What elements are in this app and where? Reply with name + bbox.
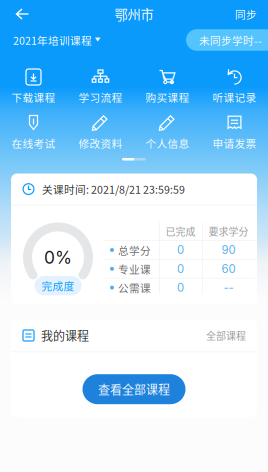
staticText: 60 — [221, 262, 235, 276]
button[interactable]: 返回 — [0, 0, 44, 28]
button[interactable]: 2021年培训课程 — [13, 27, 101, 53]
staticText: 在线考试 — [11, 135, 55, 151]
staticText: 要求学分 — [208, 224, 248, 238]
staticText: 查看全部课程 — [98, 380, 170, 398]
staticText: 鄂州市 — [114, 4, 153, 24]
staticText: 关课时间: 2021/8/21 23:59:59 — [42, 181, 185, 197]
button[interactable]: 个人信息 — [134, 108, 201, 154]
button[interactable]: 未同步学时-- — [186, 29, 268, 51]
staticText: 个人信息 — [145, 135, 189, 151]
button[interactable]: 学习流程 — [67, 62, 134, 108]
button[interactable]: 同步 — [224, 0, 268, 28]
staticText: 听课记录 — [212, 89, 256, 105]
staticText: 同步 — [235, 6, 257, 22]
staticText: 0 — [177, 281, 184, 294]
staticText: 我的课程 — [41, 327, 89, 344]
button[interactable]: 修改资料 — [67, 108, 134, 154]
staticText: 已完成 — [165, 224, 195, 238]
staticText: 专业课 — [118, 261, 151, 276]
staticText: 学习流程 — [78, 89, 122, 105]
button[interactable]: 全部课程 — [206, 328, 246, 343]
button[interactable]: 听课记录 — [201, 62, 268, 108]
staticText: 修改资料 — [78, 135, 122, 151]
staticText: 公需课 — [118, 280, 151, 295]
staticText: 未同步学时-- — [199, 32, 262, 48]
staticText: 总学分 — [118, 242, 151, 258]
staticText: 全部课程 — [206, 328, 246, 343]
staticText: 完成度 — [41, 278, 74, 293]
staticText: 90 — [221, 243, 235, 257]
staticText: -- — [223, 281, 233, 294]
button[interactable]: 查看全部课程 — [82, 374, 185, 404]
button[interactable]: 在线考试 — [0, 108, 67, 154]
button[interactable]: 购买课程 — [134, 62, 201, 108]
button[interactable]: 下载课程 — [0, 62, 67, 108]
staticText: 0 — [177, 243, 184, 257]
staticText: 0 — [177, 262, 184, 276]
staticText: 下载课程 — [11, 89, 55, 105]
staticText: 2021年培训课程 — [13, 32, 92, 48]
staticText: 申请发票 — [212, 135, 256, 151]
button[interactable]: 申请发票 — [201, 108, 268, 154]
staticText: 购买课程 — [145, 89, 189, 105]
staticText: 0% — [44, 247, 72, 268]
